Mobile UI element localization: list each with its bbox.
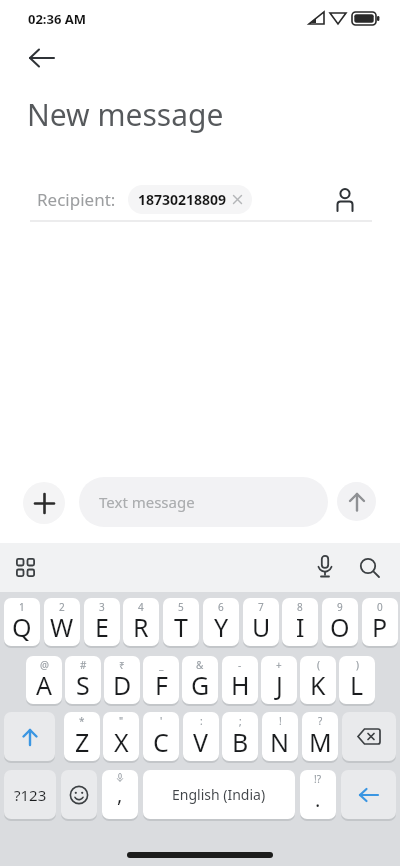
staticText: V [193, 725, 209, 759]
staticText: G [191, 668, 210, 702]
staticText: Z [75, 725, 90, 759]
button[interactable]: ! [262, 712, 298, 761]
button[interactable]: 8 [282, 598, 318, 646]
button[interactable]: - [222, 656, 258, 704]
button[interactable] [61, 770, 97, 819]
staticText: + [276, 658, 282, 672]
staticText: Text message [99, 492, 195, 512]
staticText: ! [279, 714, 282, 728]
button[interactable] [341, 770, 396, 819]
button[interactable] [352, 550, 388, 586]
button[interactable]: Text message [79, 477, 328, 527]
staticText: N [270, 725, 290, 759]
button[interactable] [23, 482, 65, 524]
staticText: ) [356, 658, 359, 672]
staticText: E [95, 610, 109, 644]
button[interactable]: ) [339, 656, 375, 704]
staticText: 7 [258, 600, 264, 614]
button[interactable]: & [182, 656, 218, 704]
button[interactable]: 18730218809 [128, 185, 252, 214]
button[interactable]: 5 [163, 598, 199, 646]
staticText: : [200, 714, 203, 728]
staticText: 5 [178, 600, 184, 614]
button[interactable]: : [183, 712, 219, 761]
staticText: 0 [377, 600, 383, 614]
staticText: " [119, 714, 124, 728]
button[interactable]: 4 [123, 598, 159, 646]
staticText: F [155, 668, 168, 702]
staticText: English (India) [172, 785, 266, 804]
staticText: 8 [297, 600, 303, 614]
staticText: & [196, 658, 204, 672]
staticText: M [309, 725, 332, 759]
button[interactable]: 0 [362, 598, 398, 646]
staticText: * [79, 714, 85, 728]
staticText: ₹ [119, 658, 125, 672]
button[interactable]: ' [143, 712, 179, 761]
button[interactable]: 3 [84, 598, 120, 646]
staticText: U [252, 610, 271, 644]
button[interactable]: ( [300, 656, 336, 704]
button[interactable]: " [103, 712, 139, 761]
staticText: A [36, 668, 52, 702]
button[interactable] [342, 712, 396, 761]
staticText: W [50, 610, 74, 644]
staticText: Recipient: [37, 188, 116, 211]
staticText: H [231, 668, 250, 702]
button[interactable]: ₹ [104, 656, 140, 704]
staticText: 18730218809 [138, 190, 227, 209]
button[interactable]: ? [302, 712, 338, 761]
button[interactable]: ; [222, 712, 258, 761]
button[interactable] [20, 38, 64, 78]
button[interactable]: + [261, 656, 297, 704]
staticText: K [310, 668, 326, 702]
staticText: 2 [59, 600, 65, 614]
staticText: 1 [19, 600, 25, 614]
staticText: ' [160, 714, 163, 728]
button[interactable] [308, 550, 342, 584]
button[interactable]: 7 [243, 598, 279, 646]
staticText: P [372, 610, 388, 644]
button[interactable]: !? [300, 770, 336, 819]
staticText: R [133, 610, 149, 644]
staticText: 3 [99, 600, 105, 614]
staticText: Q [12, 610, 32, 644]
staticText: . [315, 786, 321, 813]
button[interactable]: # [65, 656, 101, 704]
staticText: O [330, 610, 350, 644]
staticText: ? [318, 714, 323, 728]
staticText: C [153, 725, 169, 759]
staticText: - [238, 658, 242, 672]
button[interactable]: 6 [203, 598, 239, 646]
button[interactable]: _ [143, 656, 179, 704]
button[interactable] [8, 550, 42, 584]
staticText: @ [40, 658, 49, 672]
staticText: L [350, 668, 364, 702]
button[interactable]: English (India) [143, 770, 295, 819]
button[interactable]: @ [26, 656, 62, 704]
button[interactable] [327, 182, 363, 218]
button[interactable]: * [64, 712, 100, 761]
staticText: 6 [218, 600, 224, 614]
button[interactable] [337, 482, 376, 521]
button[interactable]: ?123 [4, 770, 56, 819]
staticText: _ [159, 658, 164, 672]
button[interactable] [4, 712, 55, 761]
staticText: 02:36 AM [28, 10, 87, 28]
staticText: D [113, 668, 132, 702]
staticText: ( [317, 658, 320, 672]
staticText: I [296, 610, 305, 644]
staticText: B [232, 725, 249, 759]
staticText: X [114, 725, 129, 759]
staticText: ?123 [14, 785, 47, 805]
button[interactable]: , [102, 770, 138, 819]
staticText: T [174, 610, 188, 644]
button[interactable]: 2 [44, 598, 80, 646]
staticText: New message [27, 94, 224, 135]
button[interactable]: 9 [322, 598, 358, 646]
staticText: 4 [138, 600, 144, 614]
staticText: # [80, 658, 87, 672]
button[interactable]: 1 [4, 598, 40, 646]
staticText: ; [239, 714, 242, 728]
staticText: , [117, 781, 123, 808]
